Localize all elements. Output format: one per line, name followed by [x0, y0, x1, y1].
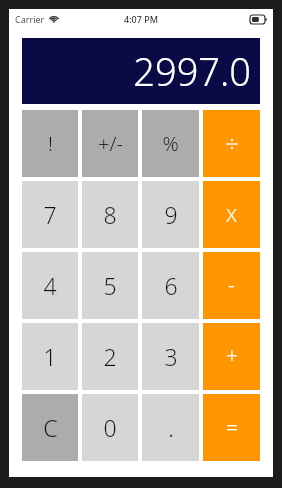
button[interactable]: 5 [82, 252, 138, 319]
button[interactable]: 7 [22, 181, 78, 248]
staticText: ! [48, 130, 53, 157]
button[interactable]: ! [22, 110, 78, 177]
staticText: 2997.0 [133, 45, 251, 97]
staticText: . [168, 412, 174, 443]
button[interactable]: 4 [22, 252, 78, 319]
staticText: 9 [164, 199, 178, 230]
staticText: C [43, 412, 58, 443]
button[interactable]: . [142, 394, 199, 461]
button[interactable]: X [203, 181, 260, 248]
button[interactable]: C [22, 394, 78, 461]
staticText: 1 [43, 341, 57, 372]
staticText: 4:07 PM [124, 13, 158, 25]
button[interactable] [203, 110, 260, 177]
button[interactable]: 9 [142, 181, 199, 248]
button[interactable]: 1 [22, 323, 78, 390]
button[interactable]: % [142, 110, 199, 177]
staticText: X [226, 202, 237, 228]
staticText: 0 [103, 412, 117, 443]
button[interactable]: 0 [82, 394, 138, 461]
staticText: 8 [103, 199, 117, 230]
button[interactable]: +/- [82, 110, 138, 177]
staticText: 5 [103, 270, 117, 301]
staticText: - [228, 271, 235, 300]
staticText: = [226, 413, 238, 442]
button[interactable]: = [203, 394, 260, 461]
staticText: 4 [43, 270, 57, 301]
staticText: % [162, 130, 179, 157]
button[interactable]: 3 [142, 323, 199, 390]
button[interactable]: - [203, 252, 260, 319]
button[interactable]: 6 [142, 252, 199, 319]
button[interactable]: 8 [82, 181, 138, 248]
staticText: + [226, 342, 238, 371]
staticText: Carrier [15, 13, 45, 25]
button[interactable]: 2 [82, 323, 138, 390]
button[interactable]: + [203, 323, 260, 390]
staticText: 3 [164, 341, 178, 372]
staticText: 2 [103, 341, 117, 372]
staticText: +/- [98, 130, 123, 157]
staticText: 7 [43, 199, 57, 230]
staticText: 6 [164, 270, 178, 301]
